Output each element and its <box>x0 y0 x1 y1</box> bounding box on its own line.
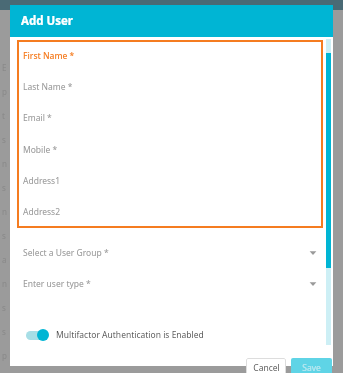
staticText: s <box>2 326 6 337</box>
button[interactable]: Mobile * <box>23 144 323 160</box>
staticText: a <box>2 254 7 265</box>
button[interactable]: Cancel <box>246 358 286 373</box>
button[interactable]: First Name * <box>23 50 323 66</box>
staticText: Last Name * <box>23 81 73 93</box>
button[interactable]: Enter user type * <box>17 273 323 295</box>
staticText: Mobile * <box>23 144 58 156</box>
staticText: Select a User Group * <box>23 247 109 259</box>
staticText: Address1 <box>23 175 61 187</box>
button[interactable]: Select a User Group * <box>17 242 323 264</box>
staticText: n <box>2 206 7 217</box>
other: Scrollbar <box>326 39 331 345</box>
staticText: t <box>2 110 5 121</box>
staticText: Email * <box>23 112 52 124</box>
staticText: Save <box>302 362 321 373</box>
staticText: Address2 <box>23 206 61 218</box>
staticText: Multifactor Authentication is Enabled <box>56 329 204 341</box>
staticText: E <box>2 62 7 73</box>
staticText: Add User <box>21 13 73 29</box>
button[interactable]: Multifactor Authentication is Enabled <box>26 325 204 345</box>
button[interactable]: Email * <box>23 112 323 128</box>
staticText: Enter user type * <box>23 278 91 290</box>
staticText: Cancel <box>253 362 280 373</box>
button[interactable]: Address1 <box>23 175 323 191</box>
staticText: p <box>2 350 7 361</box>
staticText: s <box>2 134 6 145</box>
staticText: s <box>2 302 6 313</box>
staticText: First Name * <box>23 50 75 62</box>
button[interactable]: Save <box>291 358 332 373</box>
staticText: s <box>2 230 6 241</box>
staticText: n <box>2 278 7 289</box>
button[interactable]: Address2 <box>23 206 323 222</box>
button[interactable]: Last Name * <box>23 81 323 97</box>
staticText: n <box>2 158 7 169</box>
staticText: p <box>2 86 7 97</box>
staticText: s <box>2 182 6 193</box>
